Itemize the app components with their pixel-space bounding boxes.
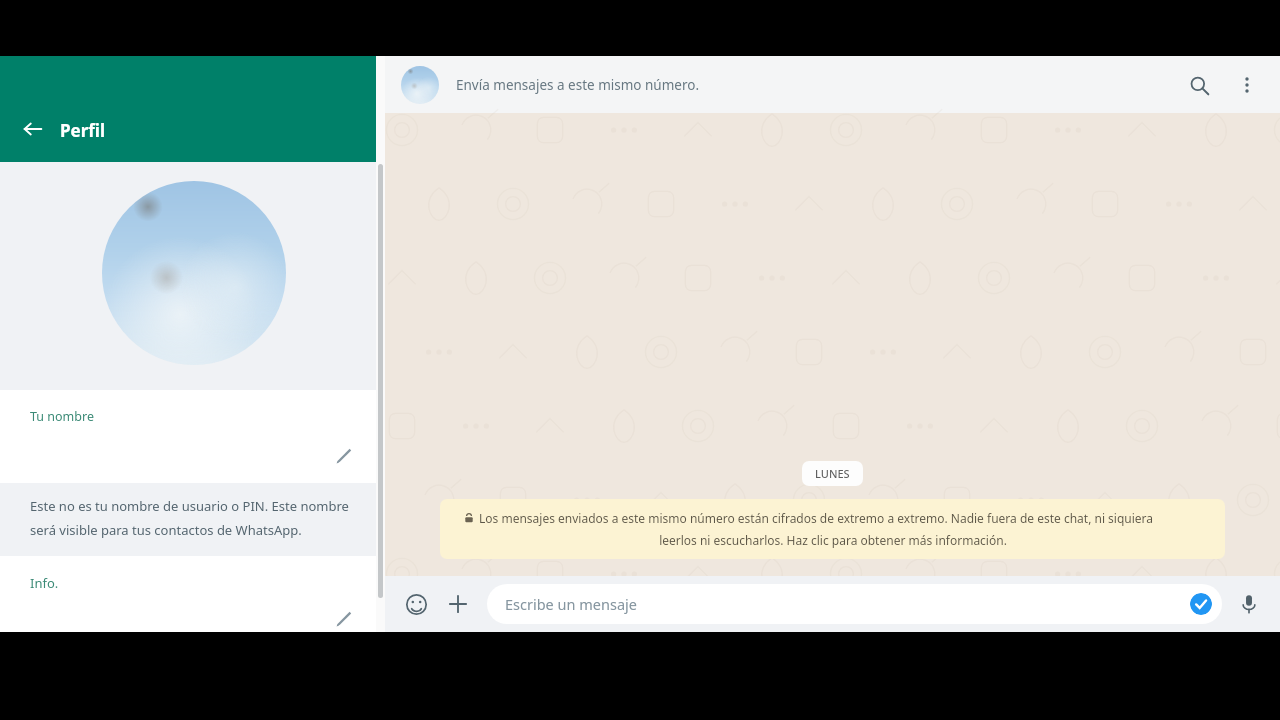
staticText: LUNES [815, 466, 850, 481]
staticText: Tu nombre [30, 408, 94, 425]
staticText: leerlos ni escucharlos. Haz clic para ob… [659, 532, 1007, 548]
button[interactable]: Los mensajes enviados a este mismo númer… [440, 499, 1225, 559]
button[interactable]: Tu nombre [0, 390, 385, 483]
other: Editar nombre [331, 443, 357, 469]
other: Editar info [331, 606, 357, 632]
staticText: Los mensajes enviados a este mismo númer… [479, 510, 1201, 526]
button[interactable]: Más opciones [1228, 66, 1266, 104]
button[interactable]: Enviar [1190, 593, 1212, 615]
button[interactable]: Escribe un mensaje [487, 584, 1222, 624]
staticText: Perfil [60, 119, 106, 142]
staticText: Envía mensajes a este mismo número. [456, 76, 700, 94]
button[interactable]: Buscar [1180, 66, 1218, 104]
button[interactable]: Info. [0, 556, 385, 632]
staticText: Este no es tu nombre de usuario o PIN. E… [30, 497, 349, 515]
button[interactable]: Adjuntar [441, 587, 475, 621]
button[interactable]: Atrás [14, 110, 52, 148]
button[interactable]: Envía mensajes a este mismo número. [401, 56, 1180, 113]
staticText: será visible para tus contactos de Whats… [30, 521, 302, 539]
button[interactable]: Emoji [399, 587, 433, 621]
staticText: Info. [30, 574, 59, 592]
staticText: Escribe un mensaje [505, 594, 637, 614]
button[interactable]: Mensaje de voz [1232, 587, 1266, 621]
